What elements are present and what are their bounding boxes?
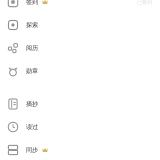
staticText: 已签到 xyxy=(137,0,152,5)
staticText: 探索 xyxy=(26,21,38,29)
button[interactable]: 勋章 xyxy=(0,59,160,82)
button[interactable]: 阅历 xyxy=(0,36,160,59)
button[interactable]: 签到 xyxy=(0,0,160,13)
button[interactable]: 摘抄 xyxy=(0,92,160,115)
button[interactable]: 探索 xyxy=(0,13,160,36)
staticText: 签到 xyxy=(26,0,38,6)
staticText: 阅历 xyxy=(26,44,38,52)
staticText: 摘抄 xyxy=(26,100,38,108)
staticText: 勋章 xyxy=(26,67,38,75)
button[interactable]: 读过 xyxy=(0,115,160,138)
button[interactable]: 同步 xyxy=(0,138,160,160)
staticText: 读过 xyxy=(26,123,38,131)
staticText: 同步 xyxy=(26,146,38,154)
